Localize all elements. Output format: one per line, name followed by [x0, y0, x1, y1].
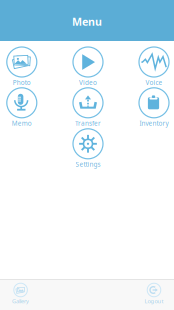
staticText: Memo — [12, 119, 32, 128]
staticText: Video — [79, 78, 97, 87]
staticText: Voice — [145, 78, 162, 87]
button[interactable]: Memo — [0, 83, 51, 123]
button[interactable]: Voice — [125, 42, 174, 82]
staticText: Photo — [13, 78, 31, 87]
staticText: Transfer — [75, 119, 101, 128]
staticText: Gallery — [12, 297, 29, 305]
button[interactable]: Settings — [59, 124, 117, 164]
button[interactable]: Inventory — [125, 83, 174, 123]
staticText: Settings — [75, 160, 100, 169]
staticText: Inventory — [139, 119, 168, 128]
staticText: Logout — [144, 297, 163, 305]
button[interactable]: Gallery — [0, 277, 42, 303]
staticText: Menu — [72, 14, 102, 29]
button[interactable]: Logout — [133, 277, 174, 303]
button[interactable]: Video — [59, 42, 117, 82]
button[interactable]: Transfer — [59, 83, 117, 123]
button[interactable]: Photo — [0, 42, 51, 82]
